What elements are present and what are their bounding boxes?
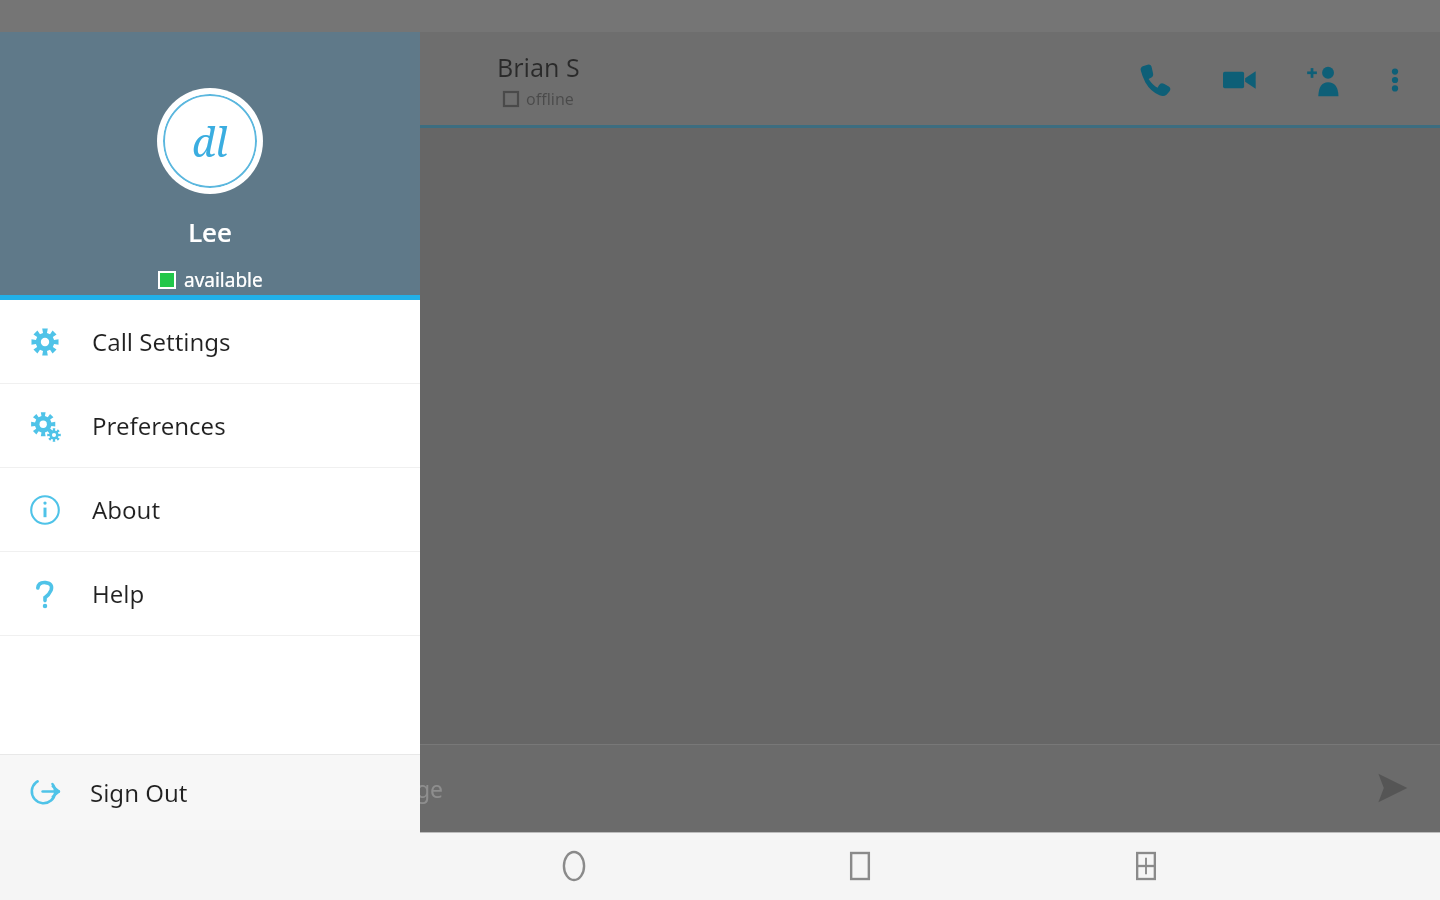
button[interactable]: Delete	[0, 744, 155, 832]
button[interactable]: Recent apps	[828, 834, 892, 898]
staticText: Brian S	[497, 50, 580, 84]
button[interactable]: Call Settings	[0, 300, 420, 383]
button[interactable]: Help	[0, 552, 420, 635]
button[interactable]: Video call	[1208, 49, 1270, 111]
button[interactable]: Call entry	[0, 261, 155, 394]
button[interactable]: Emoji	[156, 749, 234, 827]
button[interactable]: Add contact	[1292, 49, 1354, 111]
button[interactable]: Preferences	[0, 384, 420, 467]
staticText: available	[184, 267, 263, 293]
staticText: offline	[526, 88, 574, 110]
staticText: dl	[192, 114, 228, 168]
button[interactable]: Type your message	[234, 744, 1352, 832]
staticText: About	[92, 493, 161, 526]
button[interactable]: Call entry	[0, 394, 155, 527]
button[interactable]: Call entry	[0, 527, 155, 660]
staticText: Call Settings	[92, 325, 231, 358]
button[interactable]: Voice call	[1124, 49, 1186, 111]
button[interactable]: Send	[1352, 748, 1432, 828]
staticText: Help	[92, 577, 145, 610]
staticText: Sign Out	[90, 776, 188, 809]
staticText: Preferences	[92, 409, 226, 442]
button[interactable]: Sign Out	[0, 755, 420, 830]
button[interactable]: Home	[542, 834, 606, 898]
button[interactable]: About	[0, 468, 420, 551]
button[interactable]: More options	[1368, 53, 1422, 107]
button[interactable]: Collapse panel	[143, 55, 193, 105]
staticText: Type your message	[234, 773, 444, 804]
button[interactable]: Split screen	[1114, 834, 1178, 898]
staticText: Lee	[188, 214, 232, 249]
